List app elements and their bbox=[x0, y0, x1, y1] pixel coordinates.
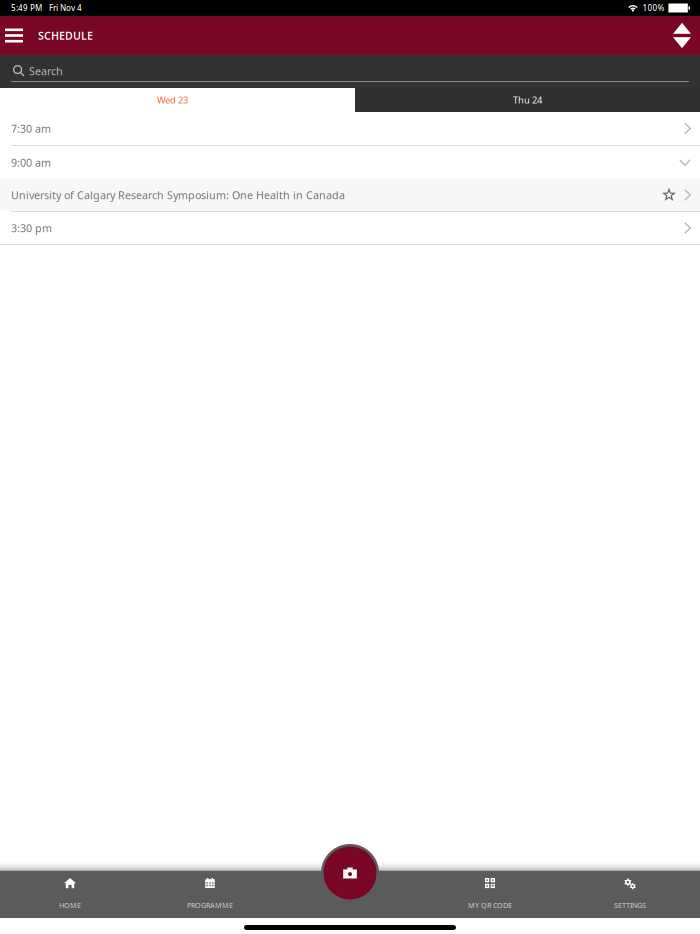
button[interactable]: 7:30 am bbox=[0, 112, 700, 145]
staticText: University of Calgary Research Symposium… bbox=[11, 188, 345, 202]
button[interactable]: Menu bbox=[0, 16, 38, 55]
staticText: Fri Nov 4 bbox=[49, 3, 82, 13]
staticText: SCHEDULE bbox=[38, 28, 93, 43]
button[interactable]: Scan QR code bbox=[321, 844, 379, 902]
staticText: MY QR CODE bbox=[468, 900, 512, 910]
staticText: HOME bbox=[59, 900, 81, 910]
staticText: 7:30 am bbox=[11, 121, 51, 136]
staticText: PROGRAMME bbox=[187, 900, 233, 910]
staticText: 100% bbox=[642, 3, 664, 13]
button[interactable]: Wed 23 bbox=[0, 88, 355, 112]
staticText: Thu 24 bbox=[513, 94, 542, 106]
staticText: 9:00 am bbox=[11, 155, 51, 170]
button[interactable]: MY QR CODE bbox=[420, 871, 560, 918]
staticText: 3:30 pm bbox=[11, 221, 52, 235]
staticText: 5:49 PM bbox=[11, 3, 42, 13]
button[interactable]: SETTINGS bbox=[560, 871, 700, 918]
button[interactable]: Thu 24 bbox=[355, 88, 700, 112]
button[interactable]: University of Calgary Research Symposium… bbox=[0, 179, 700, 211]
staticText: Search bbox=[29, 64, 63, 78]
button[interactable]: PROGRAMME bbox=[140, 871, 280, 918]
staticText: SETTINGS bbox=[614, 900, 646, 910]
button[interactable]: 9:00 am bbox=[0, 146, 700, 179]
button[interactable]: Sort bbox=[661, 16, 700, 55]
button[interactable]: HOME bbox=[0, 871, 140, 918]
button[interactable]: 3:30 pm bbox=[0, 212, 700, 244]
staticText: Wed 23 bbox=[157, 94, 188, 106]
